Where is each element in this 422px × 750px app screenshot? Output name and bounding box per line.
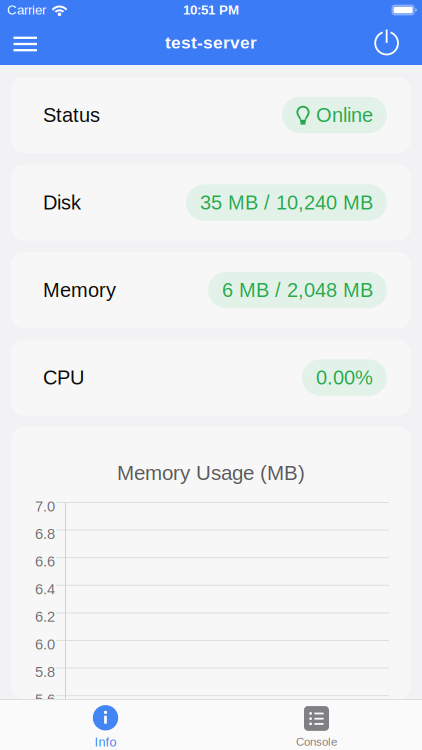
staticText: 5.8 xyxy=(35,664,55,680)
staticText: Online xyxy=(316,104,373,126)
button[interactable]: Menu xyxy=(0,21,50,64)
staticText: 6 MB / 2,048 MB xyxy=(222,279,373,301)
staticText: 6.4 xyxy=(35,581,55,597)
staticText: 0.00% xyxy=(316,366,373,389)
staticText: Status xyxy=(43,104,100,126)
staticText: Memory xyxy=(43,279,116,301)
staticText: 10:51 PM xyxy=(183,3,239,17)
staticText: 6.6 xyxy=(35,553,55,570)
staticText: 6.2 xyxy=(35,608,55,625)
staticText: 5.6 xyxy=(35,691,55,708)
button[interactable]: Info xyxy=(0,700,211,750)
staticText: test-server xyxy=(165,33,257,52)
staticText: 6.8 xyxy=(35,526,55,542)
staticText: 7.0 xyxy=(35,498,55,514)
staticText: 6.0 xyxy=(35,636,55,652)
button[interactable]: Power xyxy=(352,20,422,65)
staticText: CPU xyxy=(43,366,84,389)
staticText: Memory Usage (MB) xyxy=(117,461,305,484)
staticText: 35 MB / 10,240 MB xyxy=(200,191,373,214)
staticText: Console xyxy=(296,735,337,748)
staticText: Carrier xyxy=(7,3,46,17)
staticText: Info xyxy=(94,735,116,749)
staticText: Disk xyxy=(43,191,81,214)
button[interactable]: Console xyxy=(211,700,422,750)
